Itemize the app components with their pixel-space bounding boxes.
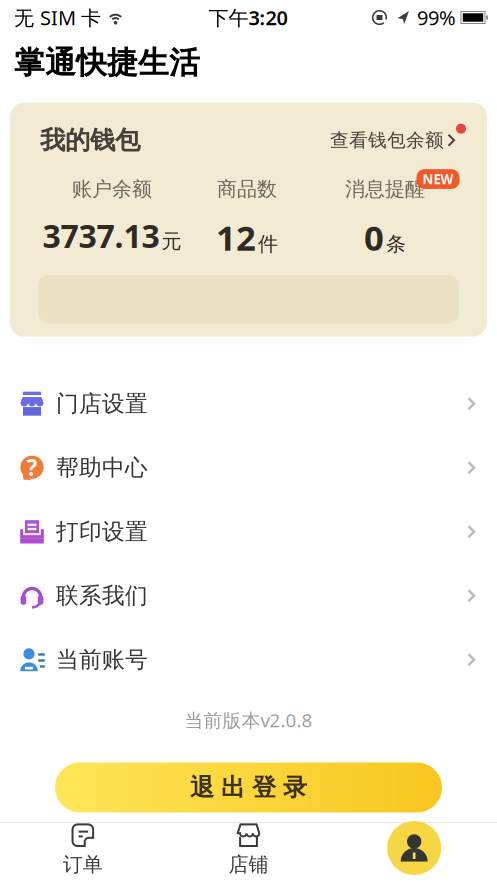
staticText: 退 出 登 录 [190, 773, 307, 802]
staticText: 账户余额 [72, 177, 152, 201]
staticText: 下午3:20 [208, 4, 287, 31]
button[interactable]: 订单 [0, 823, 166, 877]
staticText: 当前版本v2.0.8 [184, 708, 312, 732]
button[interactable]: 我的 [331, 823, 497, 877]
staticText: 商品数 [217, 177, 277, 201]
staticText: 联系我们 [56, 582, 148, 609]
staticText: 查看钱包余额 [330, 129, 444, 152]
staticText: 条 [386, 232, 406, 256]
staticText: 3737.13 [42, 214, 159, 257]
button[interactable]: 钱包操作 [10, 275, 487, 323]
staticText: NEW [422, 170, 453, 188]
button[interactable]: 退 出 登 录 [0, 762, 497, 812]
button[interactable]: 查看钱包余额 [330, 129, 455, 152]
staticText: 消息提醒 [345, 177, 425, 201]
button[interactable]: 联系我们 [0, 564, 497, 628]
staticText: 99% [417, 4, 456, 31]
staticText: ? [26, 452, 37, 482]
staticText: 订单 [63, 852, 103, 877]
staticText: 店铺 [228, 852, 268, 877]
staticText: 掌通快捷生活 [14, 44, 200, 82]
staticText: 打印设置 [56, 518, 148, 545]
button[interactable]: 当前账号 [0, 628, 497, 692]
button[interactable]: 店铺 [166, 823, 331, 877]
staticText: 当前账号 [56, 646, 148, 673]
staticText: 门店设置 [56, 390, 148, 417]
staticText: 12 [216, 214, 256, 260]
staticText: 件 [258, 232, 278, 256]
staticText: 0 [364, 214, 384, 260]
staticText: 元 [161, 229, 181, 254]
staticText: 我的钱包 [40, 125, 140, 156]
button[interactable]: 打印设置 [0, 500, 497, 564]
staticText: 无 SIM 卡 [14, 4, 101, 31]
staticText: 帮助中心 [56, 454, 148, 481]
button[interactable]: ? [0, 436, 497, 500]
button[interactable]: 门店设置 [0, 372, 497, 436]
